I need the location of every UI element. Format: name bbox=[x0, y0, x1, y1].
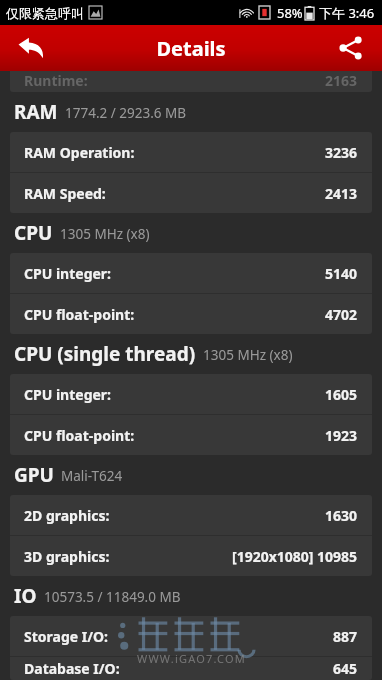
button[interactable]: CPU float-point: bbox=[10, 294, 372, 334]
staticText: 仅限紧急呼叫 bbox=[6, 5, 84, 21]
staticText: 58% bbox=[277, 4, 303, 22]
staticText: 3D graphics: bbox=[24, 547, 110, 566]
staticText: Storage I/O: bbox=[24, 627, 109, 646]
staticText: Database I/O: bbox=[24, 659, 120, 678]
staticText: RAM Operation: bbox=[24, 143, 135, 162]
button[interactable]: Share bbox=[320, 25, 382, 71]
button[interactable]: RAM Speed: bbox=[10, 173, 372, 213]
staticText: 1605 bbox=[325, 385, 358, 404]
staticText: 1774.2 / 2923.6 MB bbox=[65, 104, 187, 122]
staticText: 1923 bbox=[325, 426, 358, 445]
staticText: GPU bbox=[14, 462, 54, 488]
button[interactable]: 2D graphics: bbox=[10, 495, 372, 535]
staticText: RAM Speed: bbox=[24, 184, 106, 203]
staticText: Runtime: bbox=[24, 71, 88, 90]
staticText: Details bbox=[156, 35, 226, 62]
staticText: CPU (single thread) bbox=[14, 341, 196, 367]
button[interactable]: 3D graphics: bbox=[10, 536, 372, 576]
staticText: 1305 MHz (x8) bbox=[60, 225, 150, 243]
staticText: 1630 bbox=[325, 506, 358, 525]
staticText: 887 bbox=[333, 627, 358, 646]
staticText: 4702 bbox=[325, 305, 358, 324]
staticText: 1305 MHz (x8) bbox=[203, 346, 293, 364]
staticText: Mali-T624 bbox=[61, 467, 123, 485]
staticText: CPU float-point: bbox=[24, 305, 135, 324]
staticText: RAM bbox=[14, 99, 58, 125]
staticText: 2D graphics: bbox=[24, 506, 110, 525]
staticText: 下午 3:46 bbox=[319, 4, 375, 22]
staticText: WWW.iGAO7.COM bbox=[137, 651, 246, 666]
staticText: CPU integer: bbox=[24, 264, 112, 283]
staticText: CPU integer: bbox=[24, 385, 112, 404]
staticText: 645 bbox=[333, 659, 358, 678]
staticText: CPU float-point: bbox=[24, 426, 135, 445]
staticText: 5140 bbox=[325, 264, 358, 283]
staticText: 10573.5 / 11849.0 MB bbox=[44, 588, 181, 606]
staticText: 3236 bbox=[325, 143, 358, 162]
button[interactable]: RAM Operation: bbox=[10, 132, 372, 172]
button[interactable]: CPU integer: bbox=[10, 253, 372, 293]
button[interactable]: CPU float-point: bbox=[10, 415, 372, 455]
staticText: IO bbox=[14, 583, 37, 609]
staticText: 2163 bbox=[325, 71, 358, 90]
button[interactable]: CPU integer: bbox=[10, 374, 372, 414]
staticText: CPU bbox=[14, 220, 53, 246]
button[interactable]: Back bbox=[0, 25, 62, 71]
button[interactable]: Storage I/O: bbox=[10, 616, 372, 656]
button[interactable]: Database I/O: bbox=[10, 657, 372, 680]
staticText: [1920x1080] 10985 bbox=[232, 547, 358, 566]
button[interactable]: Runtime: bbox=[10, 71, 372, 92]
staticText: 2413 bbox=[325, 184, 358, 203]
